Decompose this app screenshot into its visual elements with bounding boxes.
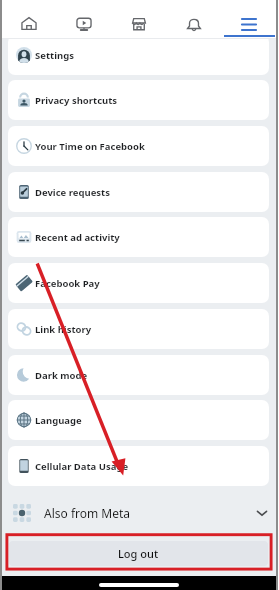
button[interactable]: Your Time on Facebook <box>8 126 269 166</box>
staticText: Also from Meta <box>44 505 131 521</box>
button[interactable]: Cellular Data Usage <box>8 446 269 486</box>
button[interactable]: Home <box>2 0 56 39</box>
button[interactable]: Settings <box>8 35 269 75</box>
staticText: Your Time on Facebook <box>35 140 145 153</box>
button[interactable]: Dark mode <box>8 355 269 395</box>
staticText: Log out <box>118 546 159 561</box>
button[interactable]: Notifications <box>166 0 221 39</box>
staticText: Settings <box>35 49 74 62</box>
staticText: Facebook Pay <box>35 277 100 290</box>
button[interactable]: Menu <box>221 0 276 39</box>
button[interactable]: Also from Meta <box>2 497 276 529</box>
button[interactable]: Marketplace <box>111 0 166 39</box>
button[interactable]: Log out <box>9 541 268 566</box>
staticText: Cellular Data Usage <box>35 460 129 473</box>
staticText: Recent ad activity <box>35 231 120 244</box>
staticText: Language <box>35 414 82 427</box>
staticText: Link history <box>35 323 92 336</box>
staticText: Dark mode <box>35 369 88 382</box>
button[interactable]: Video <box>56 0 111 39</box>
staticText: Privacy shortcuts <box>35 94 118 107</box>
button[interactable]: Facebook Pay <box>8 263 269 303</box>
other: Expand <box>256 507 268 519</box>
staticText: Device requests <box>35 186 110 199</box>
button[interactable]: Privacy shortcuts <box>8 80 269 120</box>
button[interactable]: Device requests <box>8 172 269 212</box>
button[interactable]: Recent ad activity <box>8 217 269 257</box>
button[interactable]: Language <box>8 400 269 440</box>
button[interactable]: Link history <box>8 309 269 349</box>
